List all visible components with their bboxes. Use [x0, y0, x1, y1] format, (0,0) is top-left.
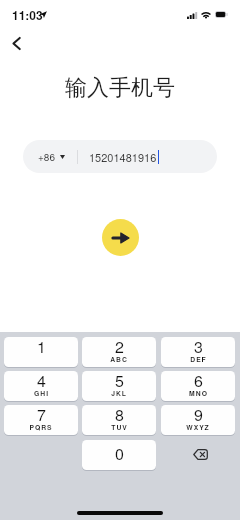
- staticText: GHI: [34, 388, 49, 398]
- staticText: 15201481916: [89, 149, 157, 165]
- button[interactable]: 7: [4, 405, 78, 435]
- staticText: 3: [194, 337, 203, 358]
- button[interactable]: 6: [161, 371, 235, 401]
- staticText: 11:03: [12, 6, 43, 23]
- staticText: 8: [115, 405, 124, 426]
- button[interactable]: 5: [82, 371, 156, 401]
- button[interactable]: 4: [4, 371, 78, 401]
- staticText: TUV: [111, 422, 128, 432]
- button[interactable]: 9: [161, 405, 235, 435]
- button[interactable]: 2: [82, 337, 156, 367]
- staticText: 9: [194, 405, 203, 426]
- staticText: 7: [37, 405, 46, 426]
- staticText: ABC: [110, 354, 128, 364]
- staticText: PQRS: [29, 422, 53, 432]
- staticText: JKL: [111, 388, 127, 398]
- button[interactable]: 3: [161, 337, 235, 367]
- button[interactable]: 1: [4, 337, 78, 367]
- button[interactable]: Next: [102, 219, 139, 256]
- staticText: +86: [38, 150, 55, 164]
- staticText: 1: [37, 337, 46, 358]
- button[interactable]: Back: [4, 31, 29, 56]
- button[interactable]: Backspace: [163, 439, 237, 469]
- staticText: 2: [115, 337, 124, 358]
- button[interactable]: +86: [23, 140, 217, 173]
- staticText: MNO: [189, 388, 208, 398]
- staticText: 6: [194, 371, 203, 392]
- staticText: 输入手机号: [65, 74, 175, 102]
- staticText: DEF: [190, 354, 207, 364]
- staticText: 5: [115, 371, 124, 392]
- button[interactable]: 0: [82, 440, 156, 470]
- staticText: 4: [37, 371, 46, 392]
- button[interactable]: 8: [82, 405, 156, 435]
- staticText: WXYZ: [186, 422, 210, 432]
- staticText: 0: [115, 442, 124, 465]
